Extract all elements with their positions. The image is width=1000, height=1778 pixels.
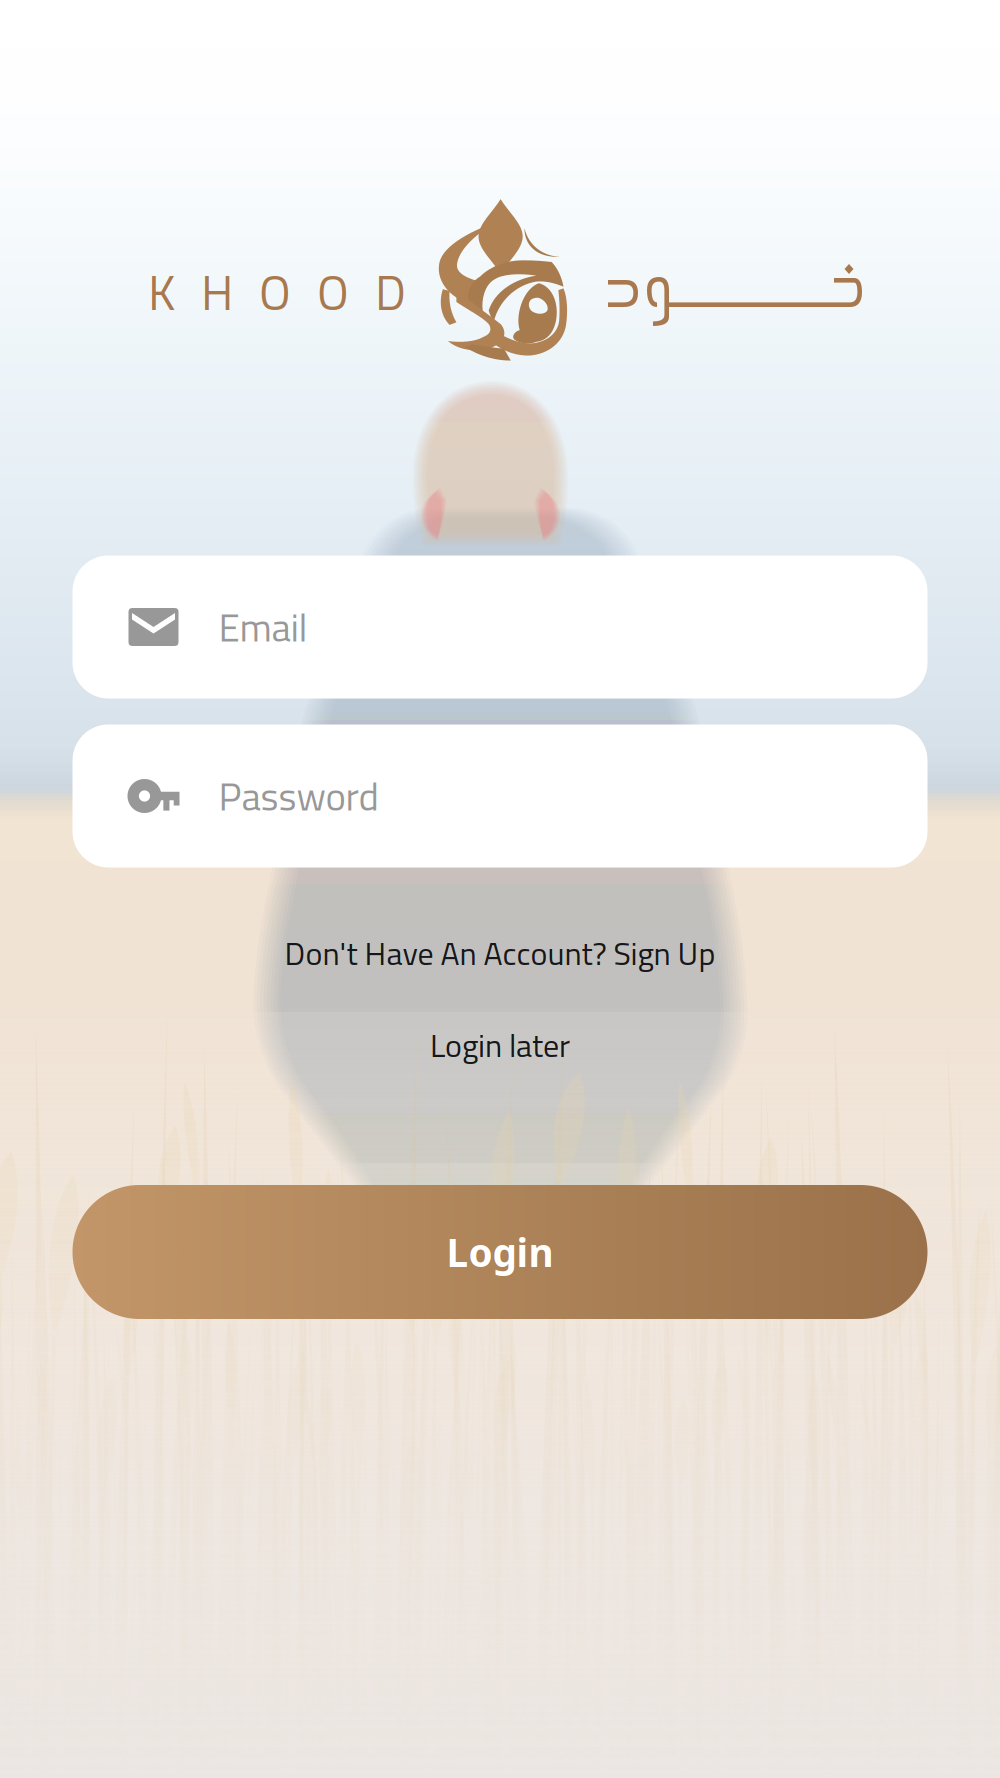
staticText: Login later <box>430 1021 570 1069</box>
button[interactable]: Email <box>72 555 927 698</box>
button[interactable]: Login <box>72 1185 927 1319</box>
staticText: Email <box>218 598 307 656</box>
staticText: Login <box>446 1226 553 1278</box>
button[interactable]: Password <box>72 724 927 867</box>
staticText: KHOOD <box>148 255 406 328</box>
button[interactable]: Don't Have An Account? Sign Up <box>180 926 820 980</box>
button[interactable]: Login later <box>180 1018 820 1072</box>
staticText: Password <box>218 767 378 825</box>
staticText: Don't Have An Account? Sign Up <box>284 929 715 977</box>
